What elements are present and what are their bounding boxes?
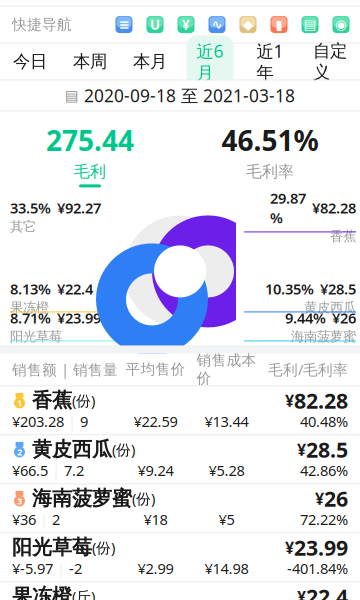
- staticText: |: [40, 510, 48, 529]
- staticText: 销售成本价: [196, 351, 256, 387]
- staticText: ◉: [335, 17, 347, 32]
- staticText: 销售额 | 销售量: [12, 360, 118, 379]
- button[interactable]: 会员: [235, 12, 261, 38]
- staticText: ¥: [285, 537, 294, 558]
- staticText: ¥66.5: [12, 461, 48, 480]
- button[interactable]: 趋势: [204, 12, 230, 38]
- staticText: 2: [17, 446, 22, 458]
- staticText: 29.87%: [270, 188, 306, 227]
- staticText: 42.86%: [300, 461, 348, 480]
- staticText: 2020-09-18 至 2021-03-18: [84, 84, 295, 107]
- staticText: 平均售价: [125, 360, 185, 378]
- staticText: ¥9.24: [137, 461, 173, 480]
- staticText: 今日: [13, 51, 47, 72]
- staticText: 40.48%: [300, 412, 348, 431]
- staticText: 毛利/毛利率: [268, 360, 348, 379]
- staticText: 72.22%: [300, 510, 348, 529]
- staticText: |: [68, 412, 76, 431]
- staticText: (份): [132, 489, 155, 508]
- staticText: 近6月: [196, 39, 223, 84]
- staticText: 香蕉: [32, 388, 72, 413]
- button[interactable]: 今日: [0, 47, 60, 76]
- staticText: ¥5.28: [208, 461, 244, 480]
- staticText: ¥203.28: [12, 412, 64, 431]
- staticText: 毛利: [74, 162, 106, 181]
- button[interactable]: 返回: [0, 0, 44, 6]
- staticText: 海南菠萝蜜: [32, 486, 132, 511]
- staticText: -2: [69, 559, 82, 578]
- staticText: ¥2.99: [137, 559, 173, 578]
- staticText: ¥22.4: [57, 279, 93, 298]
- button[interactable]: 门店: [328, 12, 354, 38]
- staticText: 快捷导航: [12, 16, 72, 34]
- button[interactable]: 商品: [111, 12, 137, 38]
- staticText: ∿: [211, 17, 222, 32]
- button[interactable]: 果冻橙: [0, 582, 360, 600]
- staticText: 果冻橙: [12, 584, 72, 600]
- button[interactable]: 46.51%: [180, 112, 360, 197]
- staticText: 82.28: [294, 386, 348, 415]
- staticText: ¥18: [143, 510, 167, 529]
- staticText: 2: [52, 510, 60, 529]
- staticText: ¥: [285, 390, 294, 411]
- staticText: 8.71%: [10, 308, 51, 327]
- staticText: 毛利率: [246, 162, 294, 181]
- staticText: 8.13%: [10, 279, 51, 298]
- button[interactable]: 报表: [297, 12, 323, 38]
- staticText: 阳光草莓: [12, 535, 92, 560]
- staticText: 本月: [133, 51, 167, 72]
- staticText: 22.4: [306, 582, 348, 600]
- button[interactable]: 阳光草莓: [0, 533, 360, 581]
- staticText: (份): [112, 440, 135, 459]
- button[interactable]: 库存: [266, 12, 292, 38]
- staticText: ¥22.59: [133, 412, 177, 431]
- staticText: 1: [17, 397, 22, 409]
- staticText: 46.51%: [221, 122, 318, 159]
- staticText: 275.44: [46, 122, 134, 159]
- staticText: 3: [17, 495, 22, 507]
- staticText: (份): [72, 391, 95, 410]
- button[interactable]: 1: [0, 386, 360, 434]
- staticText: 黄皮西瓜: [304, 299, 356, 316]
- staticText: 香蕉: [330, 228, 356, 245]
- staticText: (斤): [72, 587, 95, 600]
- staticText: 9.44%: [285, 308, 326, 327]
- staticText: ▤: [65, 87, 79, 104]
- staticText: ¥23.99: [57, 308, 101, 327]
- staticText: ¥13.44: [204, 412, 248, 431]
- staticText: ▮: [275, 17, 282, 32]
- staticText: |: [57, 559, 65, 578]
- staticText: U: [150, 16, 160, 33]
- staticText: 阳光草莓: [10, 328, 62, 345]
- staticText: 自定义: [313, 40, 347, 83]
- staticText: ◆: [243, 17, 253, 32]
- staticText: ¥28.5: [320, 279, 356, 298]
- button[interactable]: 近6月: [180, 35, 240, 88]
- staticText: ¥36: [12, 510, 36, 529]
- staticText: ▤: [303, 17, 316, 32]
- button[interactable]: 账本: [173, 12, 199, 38]
- button[interactable]: 采购: [142, 12, 168, 38]
- staticText: (份): [92, 538, 115, 557]
- button[interactable]: 3: [0, 484, 360, 532]
- staticText: ¥-5.97: [12, 559, 53, 578]
- button[interactable]: 275.44: [0, 112, 180, 197]
- button[interactable]: 本月: [120, 47, 180, 76]
- staticText: ¥: [315, 488, 324, 509]
- button[interactable]: ▤: [0, 81, 360, 111]
- button[interactable]: 近1年: [240, 35, 300, 88]
- staticText: ¥14.98: [204, 559, 248, 578]
- button[interactable]: 2: [0, 435, 360, 483]
- staticText: ¥5: [218, 510, 234, 529]
- staticText: |: [52, 461, 60, 480]
- staticText: 海南菠萝蜜: [291, 328, 356, 345]
- button[interactable]: 自定义: [300, 36, 360, 87]
- staticText: 26: [324, 484, 348, 513]
- staticText: ≡: [118, 17, 129, 32]
- button[interactable]: 本周: [60, 47, 120, 76]
- staticText: ¥: [182, 16, 190, 33]
- staticText: 本周: [73, 51, 107, 72]
- staticText: 近1年: [256, 39, 283, 84]
- staticText: ¥26: [332, 308, 356, 327]
- staticText: 7.2: [64, 461, 84, 480]
